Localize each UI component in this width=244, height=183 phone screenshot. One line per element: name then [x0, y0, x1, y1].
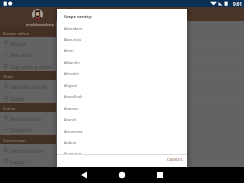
- staticText: Abondant: [64, 26, 83, 31]
- staticText: Grape variety:: [64, 14, 93, 19]
- staticText: Aranel: [64, 117, 76, 122]
- staticText: Aligoté: [64, 83, 77, 88]
- button[interactable]: Contact Us: [0, 123, 56, 134]
- button[interactable]: Albariño: [57, 57, 187, 68]
- button[interactable]: Abondant: [57, 23, 187, 34]
- staticText: Recipe editor: [3, 30, 30, 36]
- staticText: tmalvibootsharp: [26, 22, 54, 27]
- staticText: Aubun: [64, 140, 77, 145]
- button[interactable]: New recipe: [0, 48, 56, 59]
- button[interactable]: Auxerrois: [57, 148, 187, 159]
- staticText: Albariño: [64, 60, 80, 65]
- button[interactable]: Dating: [0, 92, 56, 103]
- button[interactable]: Aligoté: [57, 80, 187, 91]
- staticText: Auxerrois: [64, 151, 82, 156]
- button[interactable]: Copy existing recipe: [0, 60, 56, 71]
- staticText: Boost products: [10, 116, 42, 122]
- staticText: Logout: [10, 159, 25, 165]
- staticText: Extras: [3, 105, 16, 111]
- staticText: Alicante: [64, 71, 79, 76]
- button[interactable]: CANCEL: [163, 155, 187, 165]
- staticText: CANCEL: [167, 157, 183, 163]
- button[interactable]: Aubun: [57, 137, 187, 148]
- button[interactable]: Airen: [57, 45, 187, 56]
- staticText: Calculator Test kit: [10, 84, 47, 90]
- button[interactable]: Aranel: [57, 114, 187, 125]
- button[interactable]: Logout: [0, 155, 56, 166]
- button[interactable]: Synchronisation: [0, 144, 56, 155]
- staticText: Dating: [10, 96, 24, 102]
- staticText: Tools: [3, 73, 14, 79]
- staticText: Copy existing recipe: [10, 64, 52, 70]
- staticText: Airen: [64, 48, 74, 53]
- staticText: Arinarnoa: [64, 129, 83, 134]
- button[interactable]: Aramon: [57, 103, 187, 114]
- staticText: Amselbuk: [64, 94, 83, 99]
- staticText: Connection: [3, 137, 27, 143]
- staticText: Aramon: [64, 106, 79, 111]
- button[interactable]: Calculator Test kit: [0, 80, 56, 91]
- staticText: 9:01: [233, 1, 243, 7]
- staticText: New recipe: [10, 52, 33, 58]
- button[interactable]: Recipes: [0, 37, 56, 48]
- button[interactable]: Arinarnoa: [57, 126, 187, 137]
- staticText: Abouriou: [64, 37, 82, 42]
- staticText: Recipes: [10, 41, 26, 47]
- button[interactable]: Abouriou: [57, 34, 187, 45]
- staticText: Synchronisation: [10, 148, 44, 154]
- button[interactable]: Boost products: [0, 112, 56, 123]
- button[interactable]: Amselbuk: [57, 91, 187, 102]
- button[interactable]: Alicante: [57, 68, 187, 79]
- staticText: Contact Us: [10, 127, 33, 133]
